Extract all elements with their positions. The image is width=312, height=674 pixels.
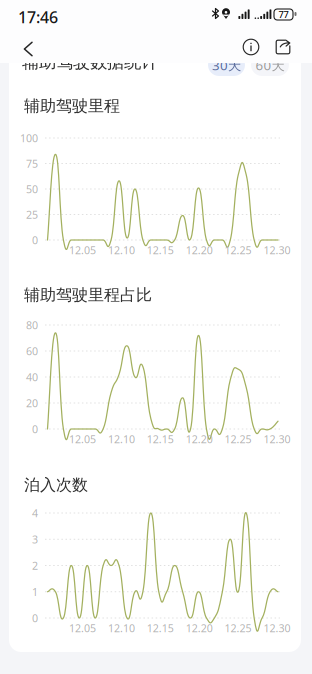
staticText: 20 bbox=[26, 396, 38, 410]
staticText: 12.05 bbox=[69, 432, 96, 446]
staticText: 辅助驾驶数据统计 bbox=[22, 51, 158, 73]
staticText: 17:46 bbox=[18, 6, 58, 28]
staticText: 0 bbox=[32, 233, 38, 247]
staticText: 12.25 bbox=[225, 432, 252, 446]
button[interactable]: Info bbox=[235, 31, 267, 63]
staticText: 40 bbox=[26, 370, 38, 384]
staticText: 80 bbox=[26, 318, 38, 332]
staticText: 12.05 bbox=[69, 243, 96, 257]
staticText: 1 bbox=[32, 585, 38, 599]
staticText: 0 bbox=[32, 422, 38, 436]
staticText: 辅助驾驶里程占比 bbox=[24, 285, 152, 305]
staticText: 2 bbox=[32, 558, 38, 573]
staticText: 50 bbox=[26, 182, 38, 196]
staticText: 辅助驾驶里程 bbox=[24, 96, 120, 116]
button[interactable]: 60天 bbox=[251, 54, 289, 76]
button[interactable]: Share bbox=[267, 31, 299, 63]
staticText: 77 bbox=[278, 8, 288, 21]
staticText: 12.10 bbox=[108, 432, 135, 446]
staticText: 12.30 bbox=[263, 243, 290, 257]
staticText: 60 bbox=[26, 344, 38, 358]
staticText: 12.20 bbox=[186, 621, 213, 635]
staticText: 12.15 bbox=[147, 432, 174, 446]
staticText: 30天 bbox=[212, 56, 241, 74]
staticText: 12.20 bbox=[186, 432, 213, 446]
staticText: 12.25 bbox=[225, 243, 252, 257]
staticText: 12.10 bbox=[108, 621, 135, 635]
staticText: 12.05 bbox=[69, 621, 96, 635]
staticText: 60天 bbox=[255, 56, 284, 74]
staticText: 25 bbox=[26, 207, 38, 222]
staticText: 12.15 bbox=[147, 243, 174, 257]
staticText: 75 bbox=[26, 156, 38, 171]
staticText: 12.30 bbox=[263, 621, 290, 635]
staticText: 泊入次数 bbox=[24, 475, 88, 495]
staticText: 12.30 bbox=[263, 432, 290, 446]
button[interactable]: 30天 bbox=[208, 54, 245, 76]
staticText: 12.15 bbox=[147, 621, 174, 635]
staticText: 12.10 bbox=[108, 243, 135, 257]
staticText: 4 bbox=[32, 506, 38, 520]
staticText: 3 bbox=[32, 532, 38, 546]
staticText: 12.20 bbox=[186, 243, 213, 257]
staticText: 0 bbox=[32, 611, 38, 625]
button[interactable]: Back bbox=[12, 33, 44, 65]
staticText: 12.25 bbox=[225, 621, 252, 635]
staticText: 100 bbox=[20, 131, 38, 145]
